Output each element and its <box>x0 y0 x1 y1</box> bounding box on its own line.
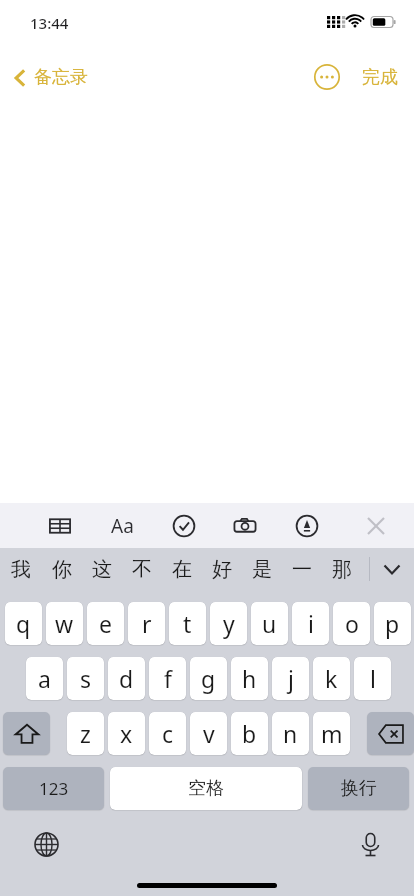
staticText: 你 <box>52 557 72 582</box>
staticText: f <box>164 663 172 694</box>
staticText: 13:44 <box>30 13 69 33</box>
staticText: w <box>55 608 74 639</box>
staticText: d <box>119 663 134 694</box>
button[interactable]: w <box>46 602 83 645</box>
staticText: b <box>242 718 257 749</box>
staticText: 换行 <box>341 777 377 800</box>
staticText: e <box>99 608 112 639</box>
button[interactable]: u <box>251 602 288 645</box>
button[interactable]: Text format <box>108 512 136 540</box>
staticText: h <box>242 663 257 694</box>
staticText: 这 <box>92 557 112 582</box>
button[interactable]: k <box>313 657 350 700</box>
staticText: v <box>203 718 215 749</box>
button[interactable]: 不 <box>122 548 162 590</box>
button[interactable]: d <box>108 657 145 700</box>
button[interactable]: n <box>272 712 309 755</box>
button[interactable]: j <box>272 657 309 700</box>
staticText: 那 <box>332 557 352 582</box>
staticText: Aa <box>111 513 134 539</box>
staticText: l <box>370 663 376 694</box>
button[interactable]: 完成 <box>356 60 404 95</box>
button[interactable]: Table <box>46 512 74 540</box>
button[interactable]: 是 <box>242 548 282 590</box>
button[interactable]: b <box>231 712 268 755</box>
staticText: m <box>321 718 343 749</box>
button[interactable]: q <box>5 602 42 645</box>
staticText: 空格 <box>188 777 224 800</box>
button[interactable]: p <box>374 602 411 645</box>
staticText: u <box>262 608 277 639</box>
button[interactable]: z <box>67 712 104 755</box>
staticText: q <box>16 608 31 639</box>
button[interactable]: 好 <box>202 548 242 590</box>
button[interactable]: Hide candidates <box>370 548 414 590</box>
staticText: 备忘录 <box>34 66 88 89</box>
button[interactable]: 备忘录 <box>8 60 94 95</box>
staticText: z <box>80 718 91 749</box>
button[interactable]: Dictation <box>354 828 386 860</box>
button[interactable]: Close keyboard <box>362 512 390 540</box>
button[interactable]: m <box>313 712 350 755</box>
button[interactable]: y <box>210 602 247 645</box>
button[interactable]: 在 <box>162 548 202 590</box>
staticText: 在 <box>172 557 192 582</box>
staticText: k <box>325 663 338 694</box>
button[interactable]: 123 <box>3 767 104 810</box>
button[interactable]: f <box>149 657 186 700</box>
staticText: p <box>385 608 400 639</box>
button[interactable]: Backspace <box>367 712 414 755</box>
button[interactable]: 空格 <box>110 767 302 810</box>
button[interactable]: 我 <box>0 548 41 590</box>
button[interactable]: a <box>26 657 63 700</box>
staticText: t <box>183 608 192 639</box>
button[interactable]: 换行 <box>308 767 409 810</box>
staticText: 一 <box>292 557 312 582</box>
button[interactable]: Camera <box>231 512 259 540</box>
staticText: a <box>38 663 51 694</box>
button[interactable]: s <box>67 657 104 700</box>
staticText: n <box>283 718 298 749</box>
button[interactable]: Shift <box>3 712 50 755</box>
button[interactable]: x <box>108 712 145 755</box>
staticText: 我 <box>11 557 31 582</box>
staticText: 123 <box>39 777 69 800</box>
button[interactable]: h <box>231 657 268 700</box>
staticText: 好 <box>212 557 232 582</box>
button[interactable]: More options <box>312 62 342 92</box>
staticText: i <box>308 608 314 639</box>
staticText: 不 <box>132 557 152 582</box>
button[interactable]: g <box>190 657 227 700</box>
button[interactable]: t <box>169 602 206 645</box>
staticText: x <box>120 718 133 749</box>
staticText: s <box>80 663 92 694</box>
staticText: 是 <box>252 557 272 582</box>
staticText: r <box>142 608 152 639</box>
staticText: j <box>288 663 294 694</box>
button[interactable]: v <box>190 712 227 755</box>
button[interactable]: c <box>149 712 186 755</box>
button[interactable]: 你 <box>41 548 82 590</box>
staticText: 完成 <box>362 66 398 89</box>
button[interactable]: Markup <box>293 512 321 540</box>
button[interactable]: o <box>333 602 370 645</box>
button[interactable]: 一 <box>282 548 322 590</box>
staticText: g <box>201 663 216 694</box>
staticText: c <box>162 718 174 749</box>
staticText: o <box>345 608 359 639</box>
staticText: y <box>223 608 235 639</box>
button[interactable]: l <box>354 657 391 700</box>
button[interactable]: r <box>128 602 165 645</box>
button[interactable]: i <box>292 602 329 645</box>
button[interactable]: e <box>87 602 124 645</box>
button[interactable]: Checklist <box>170 512 198 540</box>
button[interactable]: Switch keyboard <box>30 828 62 860</box>
button[interactable]: 这 <box>82 548 122 590</box>
button[interactable]: 那 <box>322 548 362 590</box>
